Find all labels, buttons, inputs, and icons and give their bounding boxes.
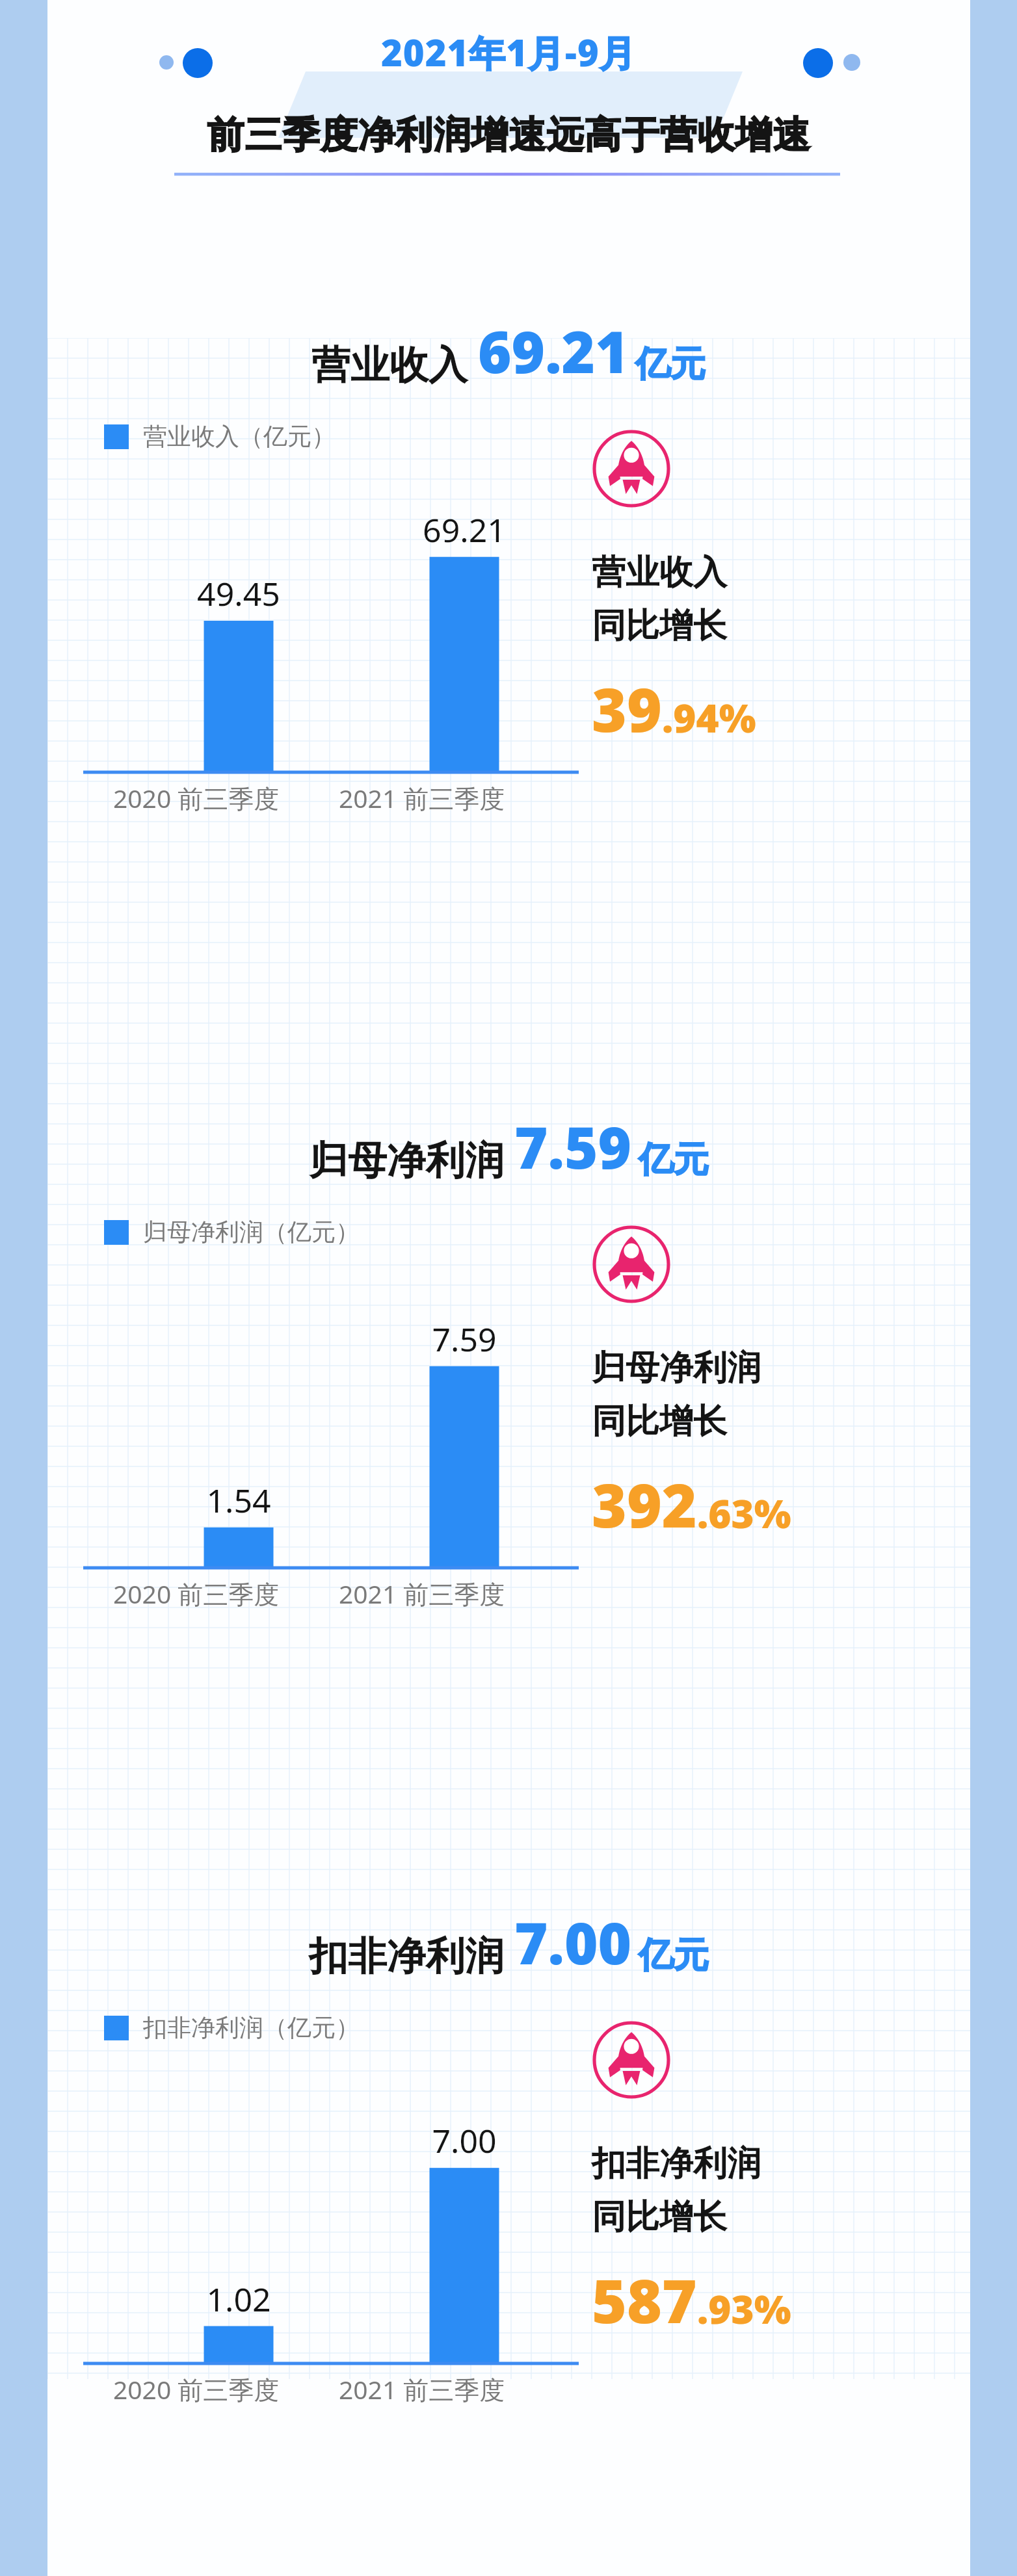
staticText: 营业收入（亿元） [143, 421, 336, 452]
staticText: 587 [592, 2259, 697, 2341]
staticText: 1.02 [183, 2277, 294, 2321]
staticText: .63% [697, 1487, 791, 1540]
staticText: 392 [592, 1464, 697, 1545]
staticText: .94% [662, 691, 756, 744]
staticText: 2020 前三季度 [113, 2372, 280, 2406]
staticText: 营业收入 [592, 551, 727, 594]
staticText: 39 [592, 668, 662, 749]
button[interactable]: 归母净利润 [0, 984, 1017, 1780]
staticText: 扣非净利润 [592, 2142, 761, 2185]
staticText: 2021年1月-9月 [381, 27, 637, 77]
staticText: 7.59 [409, 1317, 520, 1361]
staticText: 亿元 [639, 1933, 709, 1977]
staticText: 2021 前三季度 [339, 781, 505, 815]
staticText: 1.54 [183, 1478, 294, 1522]
staticText: 亿元 [635, 342, 706, 386]
staticText: 2021 前三季度 [339, 1576, 505, 1611]
staticText: 2020 前三季度 [113, 1576, 280, 1611]
button[interactable]: 扣非净利润 [0, 1780, 1017, 2575]
staticText: 归母净利润 [309, 1136, 504, 1186]
staticText: 7.00 [409, 2118, 520, 2163]
staticText: 69.21 [409, 508, 520, 552]
staticText: 7.59 [514, 1108, 632, 1186]
staticText: 亿元 [639, 1138, 709, 1182]
button[interactable]: Growth rocket [592, 1225, 671, 1304]
staticText: 归母净利润 [592, 1347, 761, 1390]
button[interactable]: Growth rocket [592, 429, 671, 508]
button[interactable]: 营业收入 [0, 189, 1017, 984]
staticText: 49.45 [183, 571, 294, 616]
staticText: 扣非净利润（亿元） [143, 2012, 360, 2043]
staticText: 同比增长 [592, 605, 727, 647]
staticText: .93% [697, 2282, 791, 2335]
staticText: 7.00 [514, 1903, 632, 1981]
staticText: 2020 前三季度 [113, 781, 280, 815]
staticText: 2021 前三季度 [339, 2372, 505, 2406]
staticText: 营业收入 [311, 341, 468, 390]
button[interactable]: Growth rocket [592, 2020, 671, 2100]
staticText: 同比增长 [592, 2196, 727, 2239]
staticText: 同比增长 [592, 1400, 727, 1443]
staticText: 前三季度净利润增速远高于营收增速 [207, 112, 810, 159]
staticText: 归母净利润（亿元） [143, 1217, 360, 1247]
staticText: 69.21 [478, 312, 629, 390]
staticText: 扣非净利润 [309, 1932, 504, 1981]
